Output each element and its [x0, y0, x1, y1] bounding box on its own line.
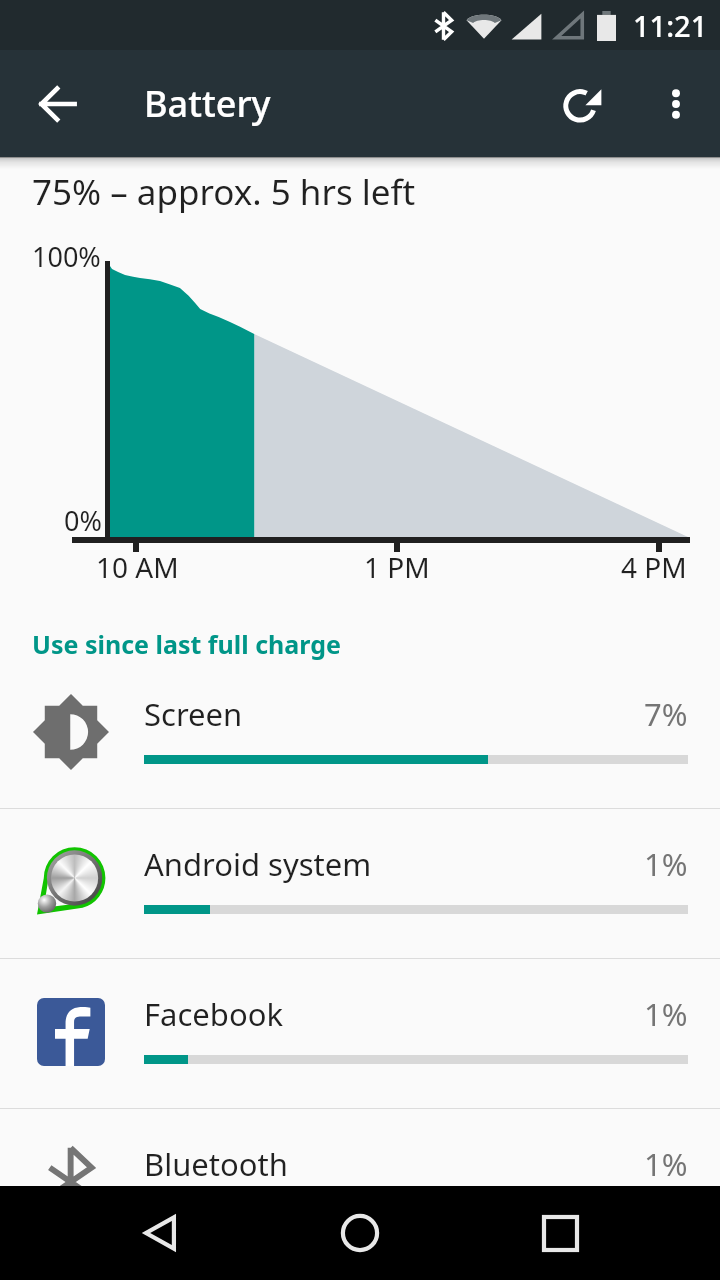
button[interactable]: Back — [113, 1186, 209, 1280]
staticText: Battery — [144, 79, 271, 128]
button[interactable]: Facebook — [0, 959, 720, 1108]
staticText: 7% — [644, 693, 688, 735]
staticText: 4 PM — [621, 548, 687, 586]
staticText: 1% — [644, 1143, 688, 1185]
staticText: 1 PM — [364, 548, 430, 586]
button[interactable]: Screen — [0, 659, 720, 808]
staticText: 75% – approx. 5 hrs left — [32, 168, 416, 216]
button[interactable]: Home — [312, 1186, 408, 1280]
button[interactable]: Back — [0, 50, 112, 157]
button[interactable]: Bluetooth — [0, 1109, 720, 1258]
staticText: 10 AM — [96, 548, 179, 586]
staticText: 11:21 — [633, 6, 708, 45]
staticText: Use since last full charge — [32, 627, 341, 661]
button[interactable]: Android system — [0, 809, 720, 958]
staticText: Facebook — [144, 993, 644, 1035]
staticText: Bluetooth — [144, 1143, 644, 1185]
staticText: 1% — [644, 843, 688, 885]
staticText: Screen — [144, 693, 644, 735]
button[interactable]: Refresh — [536, 56, 632, 152]
button[interactable]: Recent apps — [512, 1186, 608, 1280]
button[interactable]: More options — [632, 60, 720, 148]
staticText: 0% — [64, 502, 102, 539]
staticText: 1% — [644, 993, 688, 1035]
staticText: Android system — [144, 843, 644, 885]
staticText: 100% — [32, 238, 101, 275]
